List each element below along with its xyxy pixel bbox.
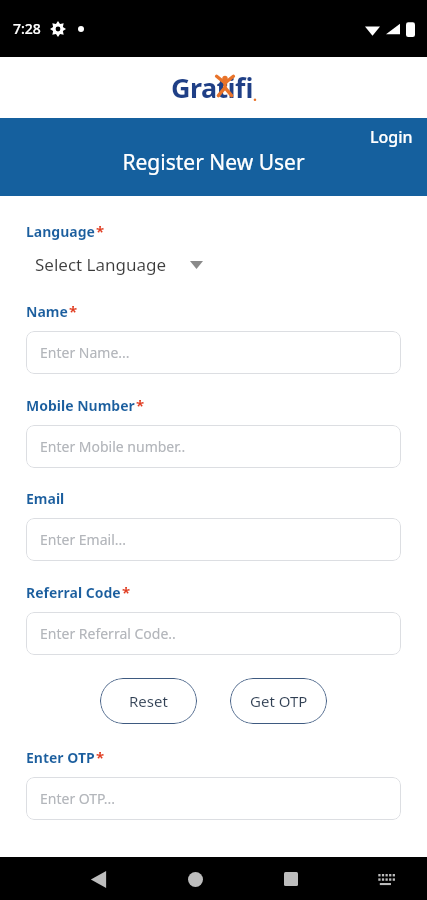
button[interactable]: Keyboard [367,859,407,899]
staticText: Reset [129,691,168,711]
staticText: Enter OTP... [40,789,116,808]
staticText: Referral Code [26,583,121,602]
button[interactable]: Enter Mobile number.. [26,425,401,468]
button[interactable]: Get OTP [230,678,327,724]
staticText: Enter Referral Code.. [40,624,176,643]
staticText: Enter Mobile number.. [40,437,186,456]
staticText: Select Language [35,253,167,276]
button[interactable]: Back [78,859,118,899]
staticText: . [253,86,257,105]
button[interactable]: Enter Referral Code.. [26,612,401,655]
staticText: * [96,747,105,767]
staticText: Mobile Number [26,396,135,415]
button[interactable]: Enter Name... [26,331,401,374]
button[interactable]: Login [356,118,427,156]
button[interactable]: Reset [100,678,197,724]
staticText: Register New User [122,148,305,177]
staticText: * [96,221,105,241]
button[interactable]: Home [175,859,215,899]
staticText: * [69,301,78,321]
button[interactable]: Select Language dropdown [35,253,203,276]
staticText: Language [26,222,95,241]
staticText: * [122,582,131,602]
button[interactable]: Enter OTP... [26,777,401,820]
staticText: Gratifi [171,69,253,106]
staticText: Get OTP [250,691,308,711]
staticText: Name [26,302,68,321]
staticText: Login [370,126,413,148]
staticText: Email [26,489,65,508]
staticText: 7:28 [13,19,41,38]
staticText: Enter Email... [40,530,127,549]
staticText: Enter Name... [40,343,130,362]
staticText: * [136,395,145,415]
button[interactable]: Enter Email... [26,518,401,561]
button[interactable]: Recent apps [271,859,311,899]
staticText: Enter OTP [26,748,95,767]
